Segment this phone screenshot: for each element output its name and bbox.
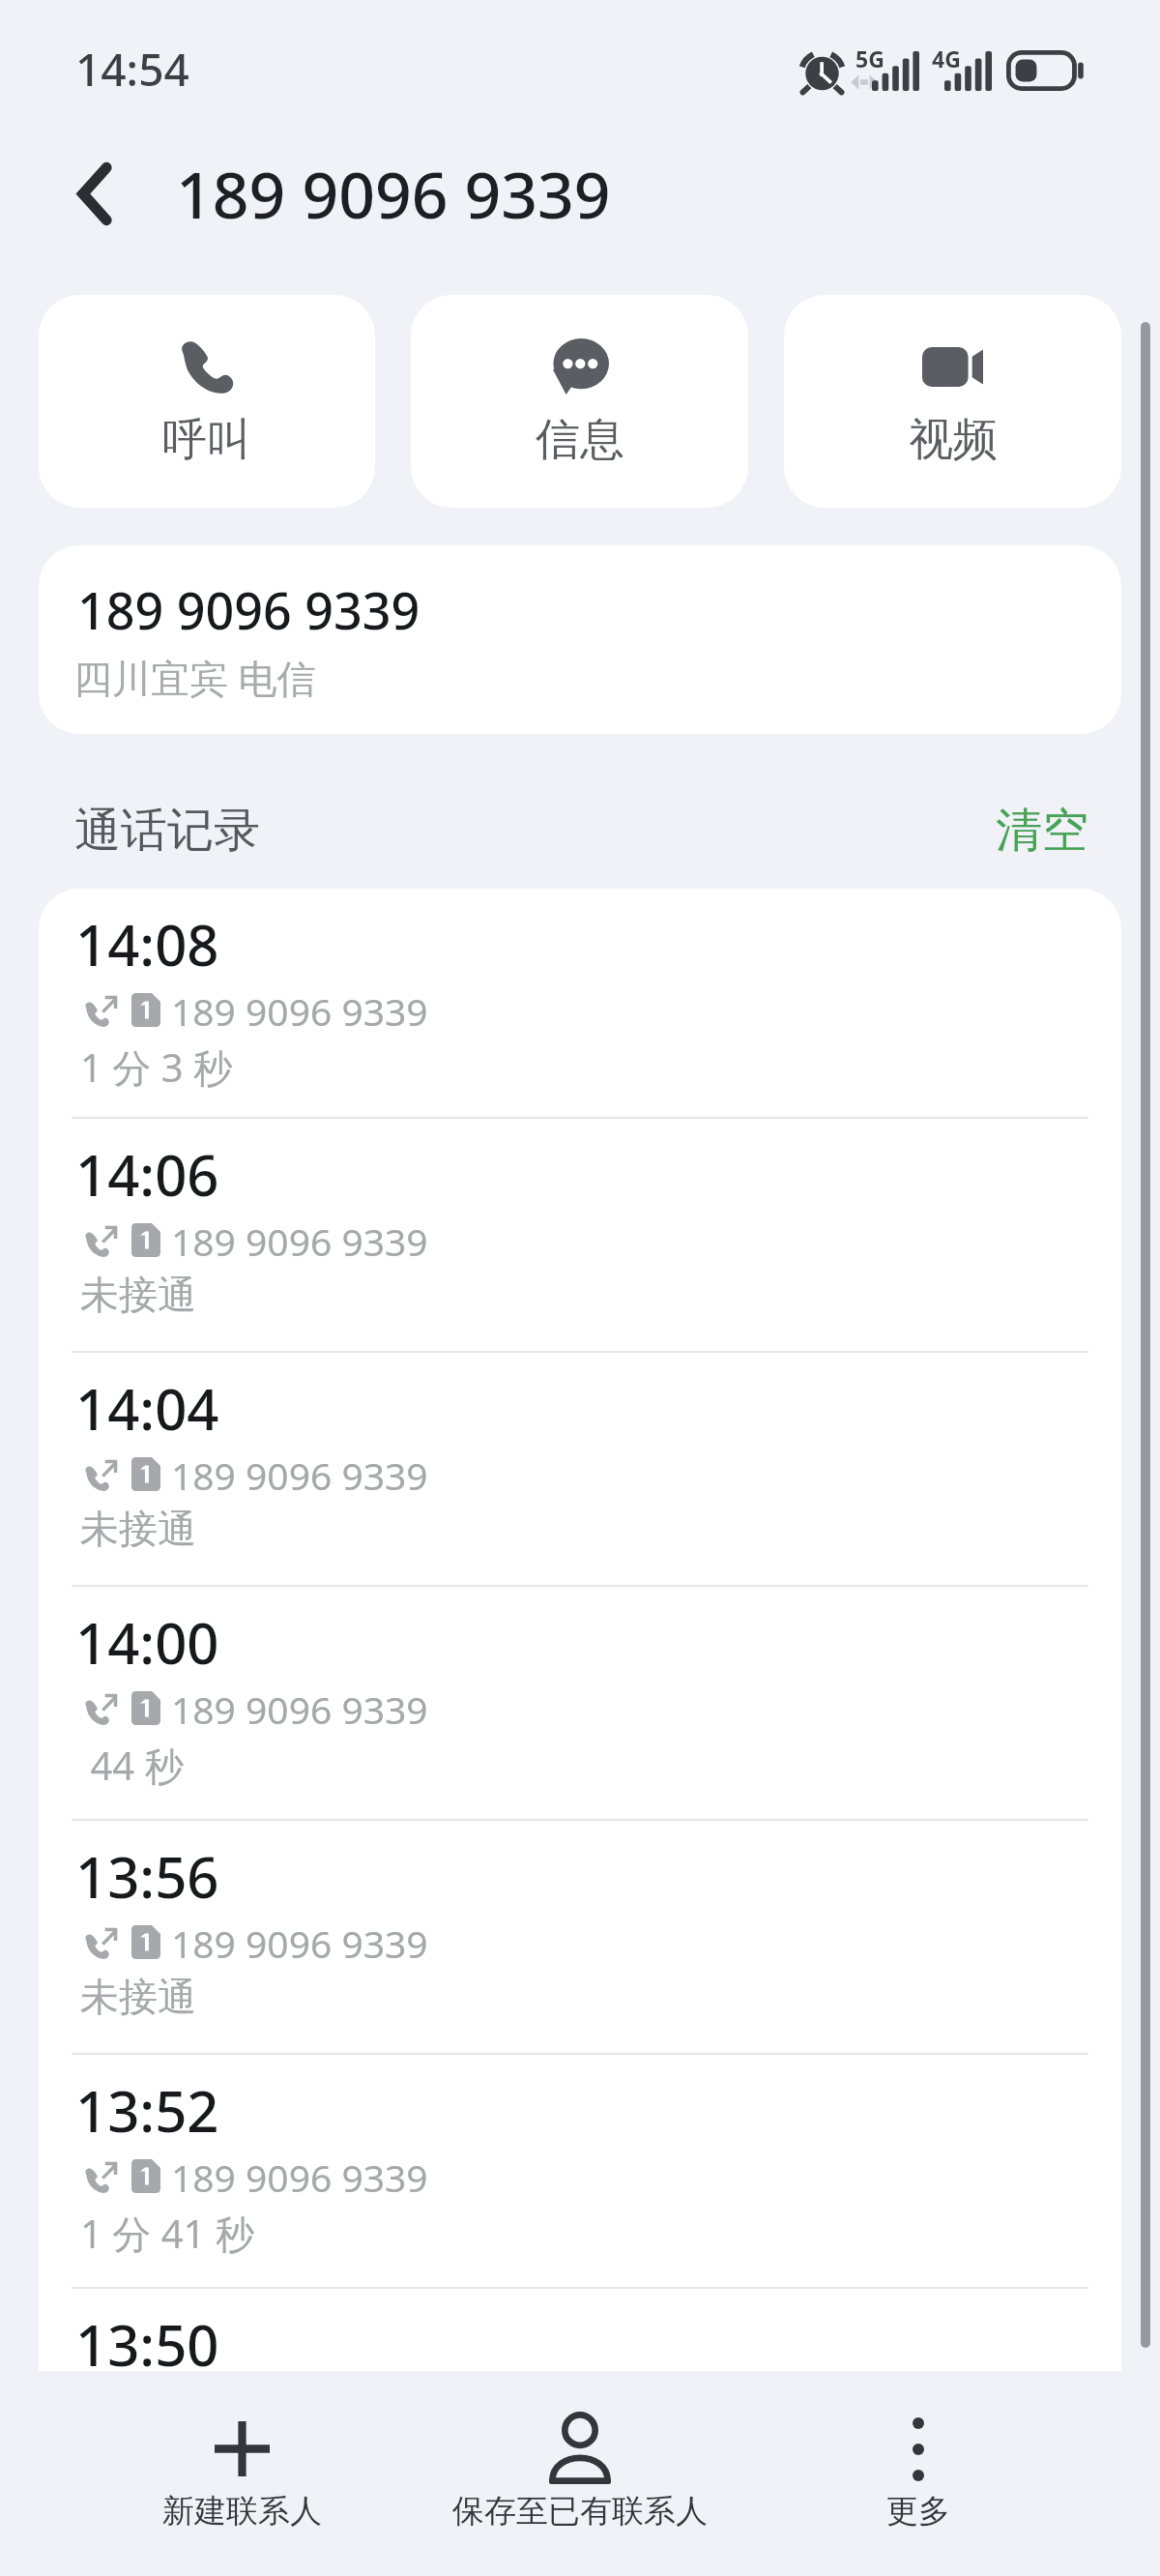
button[interactable]: 呼叫 [39, 295, 375, 508]
staticText: 5G [855, 44, 884, 73]
button[interactable]: 14:08 [39, 889, 1121, 1117]
staticText: 保存至已有联系人 [452, 2491, 708, 2532]
staticText: 189 9096 9339 [171, 1449, 428, 1501]
staticText: 4G [932, 44, 961, 73]
staticText: 189 9096 9339 [77, 575, 420, 644]
staticText: 未接通 [80, 1973, 196, 2021]
button[interactable]: 13:52 [39, 2053, 1121, 2287]
staticText: 189 9096 9339 [171, 985, 428, 1037]
staticText: 更多 [886, 2491, 950, 2532]
staticText: 189 9096 9339 [171, 1215, 428, 1267]
button[interactable]: Back [56, 155, 133, 232]
button[interactable]: 新建联系人 [72, 2371, 411, 2576]
button[interactable]: 189 9096 9339 [39, 545, 1121, 734]
staticText: 189 9096 9339 [176, 150, 611, 237]
staticText: 14:00 [75, 1604, 219, 1681]
staticText: 通话记录 [74, 802, 260, 860]
staticText: 14:06 [75, 1136, 219, 1213]
staticText: 未接通 [80, 1271, 196, 1319]
staticText: 189 9096 9339 [171, 1917, 428, 1969]
button[interactable]: 信息 [411, 295, 748, 508]
button[interactable]: 14:00 [39, 1585, 1121, 1819]
staticText: 14:54 [75, 39, 189, 100]
staticText: 14:08 [75, 906, 219, 982]
button[interactable]: 保存至已有联系人 [411, 2371, 749, 2576]
staticText: 视频 [909, 412, 998, 468]
button[interactable]: 13:50 [39, 2287, 1121, 2371]
staticText: 189 9096 9339 [171, 1683, 428, 1735]
staticText: 四川宜宾 电信 [73, 651, 316, 704]
button[interactable]: 13:56 [39, 1819, 1121, 2053]
staticText: 呼叫 [162, 412, 251, 468]
staticText: 14:04 [75, 1370, 219, 1447]
staticText: 13:50 [75, 2306, 219, 2371]
staticText: 新建联系人 [162, 2491, 322, 2532]
staticText: 44 秒 [80, 1739, 184, 1792]
button[interactable]: 视频 [784, 295, 1121, 508]
staticText: 13:56 [75, 1838, 219, 1915]
staticText: 189 9096 9339 [171, 2152, 428, 2203]
staticText: 13:52 [75, 2072, 219, 2149]
button[interactable]: 清空 [996, 802, 1088, 860]
button[interactable]: 14:06 [39, 1117, 1121, 1351]
staticText: 信息 [536, 412, 624, 468]
staticText: 1 分 41 秒 [80, 2207, 254, 2260]
staticText: 未接通 [80, 1505, 196, 1553]
staticText: 1 分 3 秒 [80, 1040, 232, 1094]
button[interactable]: 更多 [749, 2371, 1087, 2576]
staticText: 清空 [996, 802, 1088, 860]
button[interactable]: 14:04 [39, 1351, 1121, 1585]
